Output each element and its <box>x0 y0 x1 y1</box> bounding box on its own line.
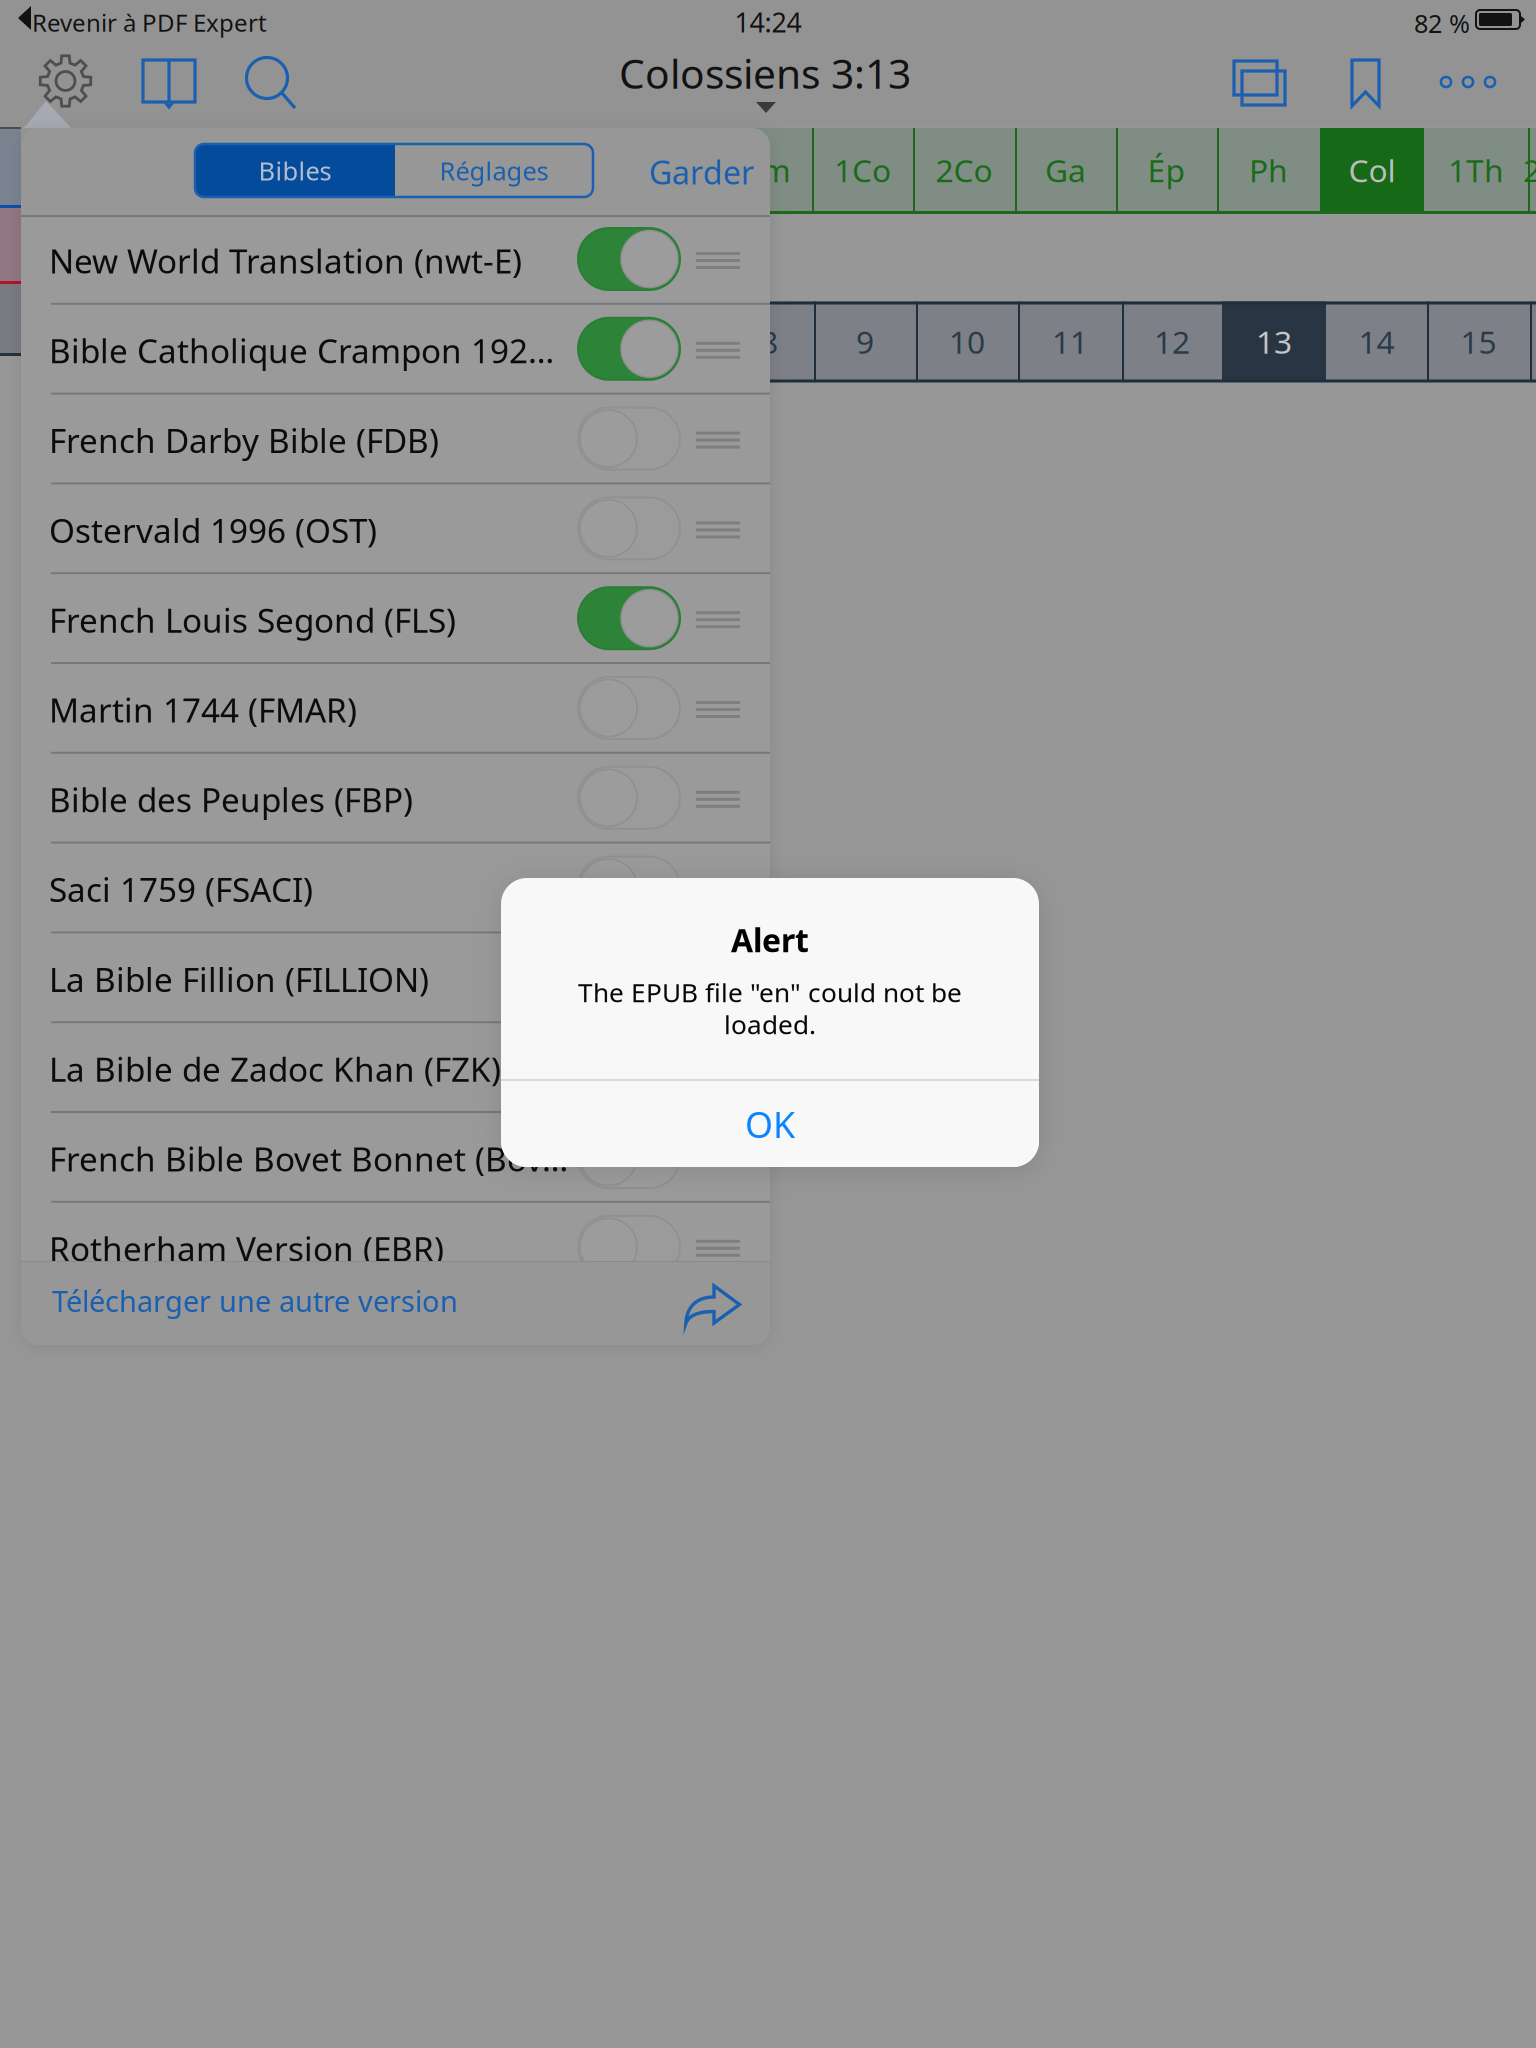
button[interactable]: Bible des Peuples (FBP) <box>21 754 770 844</box>
button[interactable]: French Louis Segond (FLS) <box>21 574 770 664</box>
staticText: 82 % <box>1414 6 1470 40</box>
staticText: 9 <box>856 320 874 363</box>
staticText: 14 <box>1358 320 1394 363</box>
staticText: loaded. <box>724 1006 816 1042</box>
button[interactable]: Settings <box>39 55 92 107</box>
button[interactable]: Rotherham Version (EBR) <box>21 1203 770 1293</box>
button[interactable]: Ph <box>1217 128 1320 212</box>
button[interactable]: Martin 1744 (FMAR) <box>21 664 770 754</box>
button[interactable]: 11 <box>1018 301 1122 381</box>
staticText: Ép <box>1147 148 1185 192</box>
staticText: 12 <box>1154 320 1190 363</box>
staticText: Bible des Peuples (FBP) <box>49 777 413 822</box>
staticText: Colossiens 3:13 <box>619 45 911 101</box>
button[interactable]: 1Co <box>812 128 913 212</box>
staticText: m <box>761 148 791 192</box>
button[interactable]: French Bible Bovet Bonnet (Bov… <box>21 1113 770 1203</box>
staticText: 8 <box>760 320 778 363</box>
button[interactable]: 12 <box>1122 301 1222 381</box>
button[interactable]: Ostervald 1996 (OST) <box>21 484 770 574</box>
button[interactable]: Télécharger une autre version <box>21 1262 770 1345</box>
button[interactable]: Reading layout <box>141 58 197 108</box>
button[interactable]: 2 <box>1528 128 1536 212</box>
button[interactable]: Garder <box>629 140 769 202</box>
staticText: 11 <box>1052 320 1088 363</box>
staticText: La Bible de Zadoc Khan (FZK) <box>49 1046 501 1091</box>
staticText: Bible Catholique Crampon 192… <box>49 328 554 373</box>
button[interactable]: 8 <box>724 301 814 381</box>
button[interactable]: 1Th <box>1424 128 1528 212</box>
button[interactable]: Bibles <box>195 144 593 197</box>
button[interactable]: Search <box>246 57 297 110</box>
button[interactable]: Colossiens 3:13 <box>535 43 995 103</box>
staticText: Saci 1759 (FSACI) <box>49 867 313 912</box>
button[interactable]: 2Co <box>913 128 1015 212</box>
button[interactable]: 14 <box>1326 301 1427 381</box>
button[interactable]: New World Translation (nwt-E) <box>21 215 770 305</box>
staticText: Télécharger une autre version <box>52 1281 458 1320</box>
staticText: Ph <box>1249 148 1288 192</box>
staticText: Col <box>1348 148 1395 192</box>
button[interactable]: More options <box>1440 76 1496 88</box>
button[interactable]: Bible Catholique Crampon 192… <box>21 305 770 395</box>
staticText: Rotherham Version (EBR) <box>49 1226 444 1271</box>
staticText: La Bible Fillion (FILLION) <box>49 956 429 1002</box>
staticText: French Louis Segond (FLS) <box>49 597 456 642</box>
button[interactable]: Revenir à PDF Expert <box>0 0 300 44</box>
staticText: 14:24 <box>734 4 801 40</box>
staticText: Martin 1744 (FMAR) <box>49 687 357 732</box>
button[interactable]: Bookmark <box>1350 58 1381 108</box>
staticText: Revenir à PDF Expert <box>32 6 267 39</box>
staticText: 10 <box>949 320 985 363</box>
staticText: 1Co <box>834 148 891 192</box>
button[interactable]: Ga <box>1015 128 1116 212</box>
staticText: The EPUB file "en" could not be <box>578 974 962 1010</box>
button[interactable]: Ép <box>1116 128 1217 212</box>
button[interactable]: 9 <box>814 301 916 381</box>
staticText: Alert <box>731 918 809 962</box>
button[interactable]: OK <box>501 1081 1039 1167</box>
staticText: 2Co <box>935 148 992 192</box>
staticText: OK <box>745 1100 795 1148</box>
staticText: 2 <box>1523 148 1536 192</box>
button[interactable]: La Bible Fillion (FILLION) <box>21 933 770 1023</box>
button[interactable]: m <box>740 128 812 212</box>
staticText: 15 <box>1460 320 1496 363</box>
button[interactable]: 10 <box>916 301 1018 381</box>
staticText: Bibles <box>258 153 331 188</box>
button[interactable]: Saci 1759 (FSACI) <box>21 844 770 933</box>
staticText: Réglages <box>439 153 548 188</box>
staticText: 13 <box>1256 320 1292 363</box>
staticText: French Darby Bible (FDB) <box>49 418 439 463</box>
staticText: New World Translation (nwt-E) <box>49 238 522 283</box>
button[interactable]: French Darby Bible (FDB) <box>21 395 770 484</box>
staticText: 1Th <box>1448 148 1504 192</box>
staticText: French Bible Bovet Bonnet (Bov… <box>49 1136 568 1181</box>
button[interactable]: La Bible de Zadoc Khan (FZK) <box>21 1023 770 1113</box>
button[interactable] <box>1530 301 1536 381</box>
button[interactable]: 15 <box>1427 301 1530 381</box>
button[interactable]: Col <box>1320 128 1424 212</box>
staticText: Ga <box>1045 148 1086 192</box>
staticText: Ostervald 1996 (OST) <box>49 507 377 553</box>
staticText: Garder <box>649 150 754 194</box>
button[interactable]: 13 <box>1222 301 1326 381</box>
button[interactable]: Windows <box>1232 59 1287 107</box>
